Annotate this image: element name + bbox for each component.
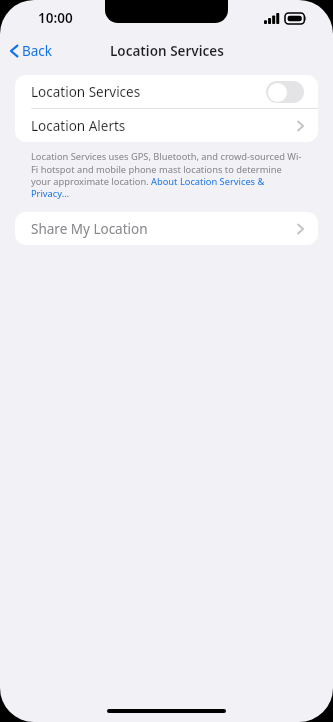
staticText: Location Services [110, 42, 224, 60]
staticText: Location Services [31, 83, 141, 101]
button[interactable]: Location Alerts [15, 109, 318, 142]
other: Open [297, 120, 304, 132]
other: Open [297, 223, 304, 235]
button[interactable]: Location Services [15, 75, 318, 108]
button[interactable]: Back [0, 38, 63, 64]
staticText: Back [22, 42, 53, 60]
button[interactable]: Share My Location [15, 212, 318, 245]
staticText: Location Services uses GPS, Bluetooth, a… [31, 150, 302, 199]
staticText: Location Alerts [31, 117, 126, 135]
staticText: 10:00 [38, 9, 73, 27]
staticText: Share My Location [31, 220, 148, 238]
button[interactable]: Location Services toggle [266, 81, 304, 103]
